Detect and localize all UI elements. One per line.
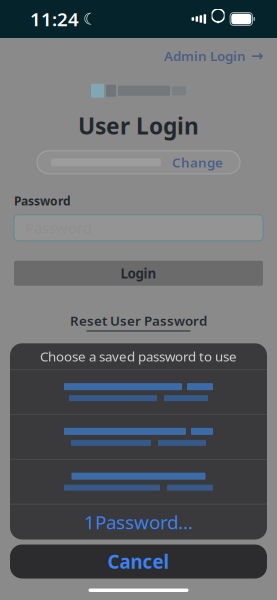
staticText: Cancel (107, 549, 169, 574)
button[interactable]: Admin Login (158, 43, 269, 69)
staticText: 11:24 (30, 7, 79, 31)
button[interactable]: Login (14, 261, 263, 286)
button[interactable]: Reset User Password (70, 308, 207, 335)
button[interactable]: Change (169, 150, 226, 174)
button[interactable]: Saved password entry (10, 415, 267, 459)
button[interactable]: Saved password entry (10, 370, 267, 414)
staticText: Reset User Password (70, 312, 207, 329)
button[interactable]: 1Password… (10, 504, 267, 539)
staticText: ☾ (83, 10, 97, 28)
staticText: 1Password… (84, 510, 193, 534)
staticText: Password (14, 193, 71, 209)
staticText: Login (120, 264, 156, 282)
button[interactable]: Saved password entry (10, 460, 267, 504)
staticText: → (251, 47, 263, 64)
staticText: User Login (78, 111, 199, 141)
staticText: Change (172, 153, 223, 171)
staticText: Choose a saved password to use (40, 347, 237, 365)
button[interactable]: Cancel (10, 544, 267, 578)
staticText: Admin Login (164, 47, 246, 65)
